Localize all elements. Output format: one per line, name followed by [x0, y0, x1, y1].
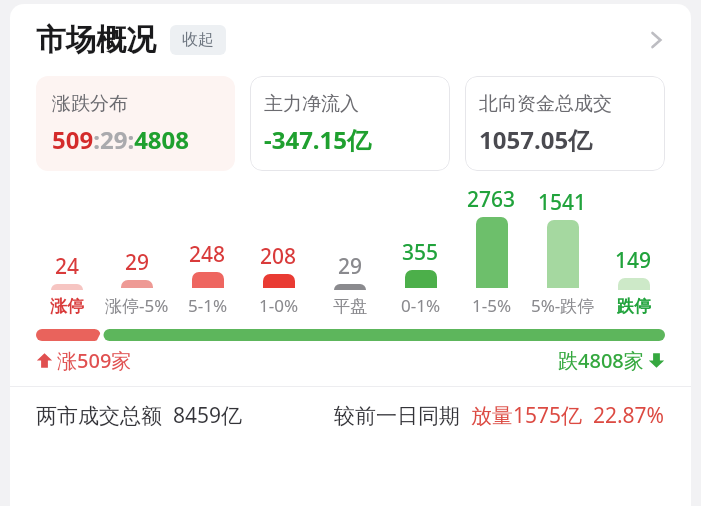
button[interactable]: 24: [32, 187, 102, 317]
button[interactable]: 29: [314, 187, 385, 317]
staticText: 2763: [467, 185, 516, 214]
staticText: 北向资金总成交: [479, 92, 612, 116]
staticText: 29: [125, 248, 150, 277]
staticText: 较前一日同期 放量1575亿 22.87%: [334, 401, 665, 430]
staticText: 1057.05亿: [479, 123, 593, 156]
staticText: 1-5%: [472, 294, 512, 317]
staticText: 509:29:4808: [52, 123, 190, 156]
staticText: 24: [55, 252, 80, 281]
staticText: 1541: [538, 188, 587, 217]
button[interactable]: 查看更多: [639, 23, 673, 57]
button[interactable]: 主力净流入: [250, 76, 450, 171]
staticText: 1-0%: [259, 294, 299, 317]
button[interactable]: 涨跌分布: [36, 76, 235, 171]
button[interactable]: 1541: [527, 185, 598, 317]
staticText: 29: [338, 252, 363, 281]
staticText: 208: [260, 242, 297, 271]
staticText: 市场概况: [36, 21, 156, 59]
staticText: 5-1%: [188, 294, 228, 317]
staticText: 涨停: [50, 296, 84, 317]
staticText: 两市成交总额 8459亿: [36, 401, 242, 430]
button[interactable]: 2763: [456, 185, 527, 317]
staticText: 跌停: [617, 296, 651, 317]
staticText: 收起: [182, 30, 214, 50]
button[interactable]: 149: [598, 187, 669, 317]
staticText: 跌4808家: [558, 347, 644, 374]
staticText: -347.15亿: [264, 123, 372, 156]
staticText: 平盘: [333, 296, 367, 317]
button[interactable]: 355: [385, 185, 456, 317]
button[interactable]: 涨509家: [36, 347, 132, 374]
button[interactable]: 248: [172, 185, 243, 317]
staticText: 涨停-5%: [105, 294, 169, 317]
staticText: 355: [402, 238, 439, 267]
staticText: 248: [189, 240, 226, 269]
staticText: 涨跌分布: [52, 92, 128, 116]
staticText: 涨509家: [57, 347, 132, 374]
button[interactable]: 跌4808家: [558, 347, 665, 374]
button[interactable]: 市场概况: [10, 4, 691, 76]
staticText: 149: [615, 246, 652, 275]
staticText: 5%-跌停: [531, 294, 595, 317]
button[interactable]: 208: [243, 185, 314, 317]
button[interactable]: 29: [102, 185, 172, 317]
button[interactable]: 北向资金总成交: [465, 76, 665, 171]
staticText: 主力净流入: [264, 92, 359, 116]
button[interactable]: 收起: [170, 25, 226, 55]
staticText: 0-1%: [401, 294, 441, 317]
